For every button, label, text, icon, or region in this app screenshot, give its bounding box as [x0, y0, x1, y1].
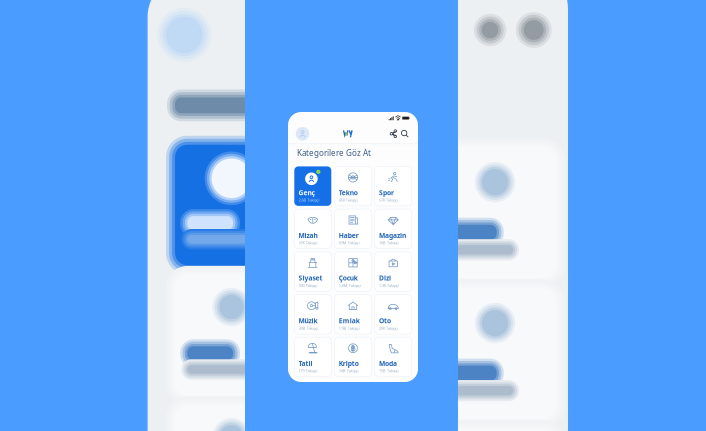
staticText: Siyaset [298, 274, 322, 282]
button[interactable]: Dizi [375, 252, 412, 291]
staticText: Kategorilere Göz At [297, 148, 371, 158]
staticText: Mizah [298, 231, 317, 240]
button[interactable]: Müzik [294, 294, 331, 334]
staticText: 1.9B Takipçi [339, 325, 360, 331]
staticText: Müzik [298, 316, 317, 325]
button[interactable]: Kripto [334, 337, 371, 377]
staticText: Oto [379, 316, 391, 325]
button[interactable]: Genç [294, 166, 331, 206]
staticText: 1.6M Takipçi [339, 283, 361, 288]
staticText: 15B Takipçi [379, 368, 399, 373]
staticText: Genç [298, 188, 314, 197]
button[interactable]: Magazin [375, 209, 412, 249]
button[interactable]: Moda [375, 337, 412, 377]
button[interactable]: Tekno [334, 166, 371, 206]
staticText: Haber [339, 231, 359, 240]
staticText: 57K Takipçi [379, 197, 398, 203]
staticText: 30B Takipçi [298, 325, 318, 331]
button[interactable]: Oto [375, 294, 412, 334]
staticText: 2.6B Takipçi [298, 197, 319, 203]
staticText: 450 Takipçi [339, 197, 358, 203]
button[interactable]: Share [388, 128, 399, 140]
staticText: Magazin [379, 231, 406, 240]
staticText: 179 Takipçi [298, 368, 317, 373]
staticText: 1.9K Takipçi [379, 283, 399, 288]
staticText: Tekno [339, 188, 358, 197]
button[interactable]: Search [399, 128, 410, 140]
button[interactable]: Çocuk [334, 252, 371, 291]
staticText: Moda [379, 359, 397, 368]
button[interactable]: Tatil [294, 337, 331, 377]
staticText: Çocuk [339, 274, 358, 282]
staticText: 16B Takipçi [379, 240, 399, 245]
staticText: 14B Takipçi [339, 368, 359, 373]
staticText: Spor [379, 188, 394, 197]
staticText: Emlak [339, 316, 360, 325]
staticText: 20K Takipçi [379, 325, 398, 331]
staticText: 57K Takipçi [298, 240, 317, 245]
button[interactable]: Siyaset [294, 252, 331, 291]
button[interactable]: Emlak [334, 294, 371, 334]
staticText: Tatil [298, 359, 312, 368]
staticText: Kripto [339, 359, 359, 368]
staticText: 690 Takipçi [298, 283, 317, 288]
button[interactable]: Haber [334, 209, 371, 249]
button[interactable]: Mizah [294, 209, 331, 249]
staticText: Dizi [379, 274, 391, 282]
button[interactable]: Spor [375, 166, 412, 206]
button[interactable]: Profile [295, 127, 309, 141]
staticText: 63M Takipçi [339, 240, 360, 245]
